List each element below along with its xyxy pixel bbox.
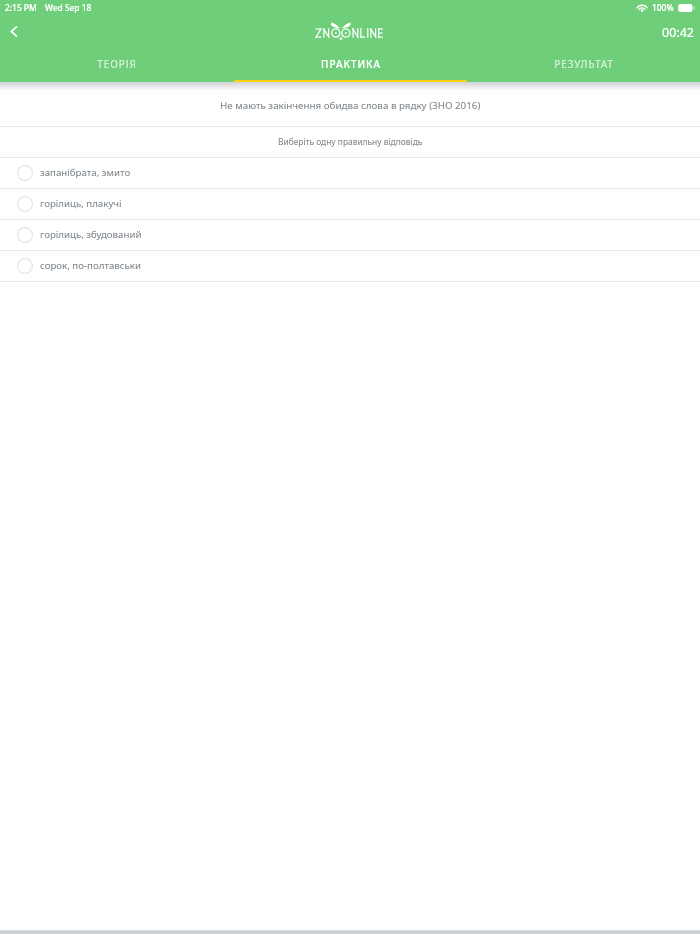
button[interactable]: РЕЗУЛЬТАТ [467, 48, 700, 82]
staticText: ТЕОРІЯ [97, 57, 137, 71]
button[interactable]: ПРАКТИКА [234, 48, 467, 82]
staticText: 00:42 [662, 24, 694, 41]
button[interactable]: Back [0, 18, 28, 46]
button[interactable]: горілиць, плакучі [0, 189, 700, 219]
button[interactable]: сорок, по-полтавськи [0, 251, 700, 281]
staticText: 100% [652, 2, 674, 13]
staticText: Виберіть одну правильну відповідь [278, 136, 423, 147]
button[interactable]: горілиць, збудований [0, 220, 700, 250]
staticText: Wed Sep 18 [45, 2, 92, 13]
button[interactable]: ТЕОРІЯ [0, 48, 234, 82]
staticText: Не мають закінчення обидва слова в рядку… [220, 99, 481, 112]
staticText: запанібрата, змито [40, 166, 131, 179]
staticText: 2:15 PM [5, 2, 37, 13]
staticText: горілиць, плакучі [40, 197, 122, 210]
staticText: сорок, по-полтавськи [40, 259, 141, 272]
staticText: горілиць, збудований [40, 228, 142, 241]
button[interactable]: запанібрата, змито [0, 158, 700, 188]
staticText: РЕЗУЛЬТАТ [554, 57, 614, 71]
staticText: ПРАКТИКА [321, 57, 381, 71]
